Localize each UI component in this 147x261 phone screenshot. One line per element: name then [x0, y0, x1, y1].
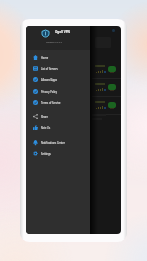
button[interactable]: Share: [26, 111, 90, 122]
staticText: Ogoll VPN: [55, 30, 70, 34]
staticText: Allowed Apps: [41, 78, 58, 81]
button[interactable]: Rate Us: [26, 122, 90, 133]
button[interactable]: Connect: [26, 62, 121, 80]
staticText: List of Servers: [41, 67, 58, 70]
button[interactable]: Settings: [26, 148, 90, 159]
staticText: Terms of Service: [41, 101, 61, 104]
staticText: Version 10.4.4: [46, 40, 62, 43]
staticText: Rate Us: [41, 126, 51, 129]
button[interactable]: Connect: [108, 102, 116, 108]
button[interactable]: Home: [26, 52, 90, 63]
button[interactable]: Terms of Service: [26, 97, 90, 108]
button[interactable]: Privacy Policy: [26, 86, 90, 97]
button[interactable]: Allowed Apps: [26, 74, 90, 85]
staticText: Notifications Center: [41, 141, 65, 144]
button[interactable]: Connect: [26, 80, 121, 98]
staticText: Home: [41, 56, 49, 59]
button[interactable]: Account: [112, 29, 115, 32]
staticText: Settings: [41, 152, 51, 155]
button[interactable]: Connect: [108, 66, 116, 72]
button[interactable]: Connect: [26, 98, 121, 116]
button[interactable]: Connect: [108, 84, 116, 90]
button[interactable]: Notifications Center: [26, 137, 90, 148]
staticText: Share: [41, 115, 48, 118]
button[interactable]: List of Servers: [26, 63, 90, 74]
staticText: Privacy Policy: [41, 90, 58, 93]
